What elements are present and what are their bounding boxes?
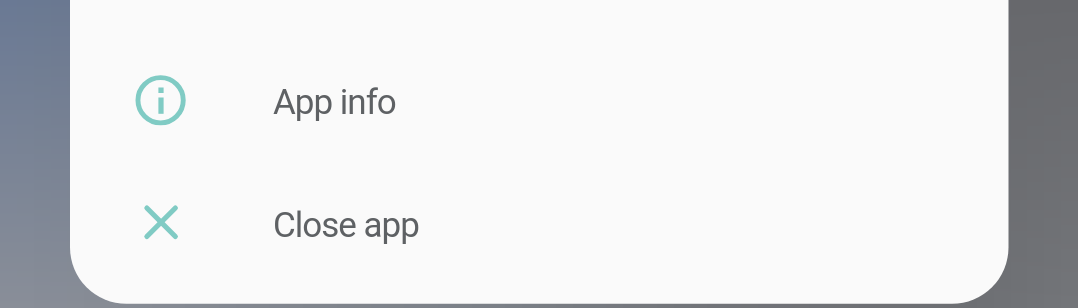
staticText: Close app [273,205,419,246]
staticText: App info [273,82,396,123]
other: Close app [136,198,184,246]
button[interactable]: App info [70,38,1008,160]
other: App info [136,75,184,123]
button[interactable]: Close app [70,161,1008,283]
